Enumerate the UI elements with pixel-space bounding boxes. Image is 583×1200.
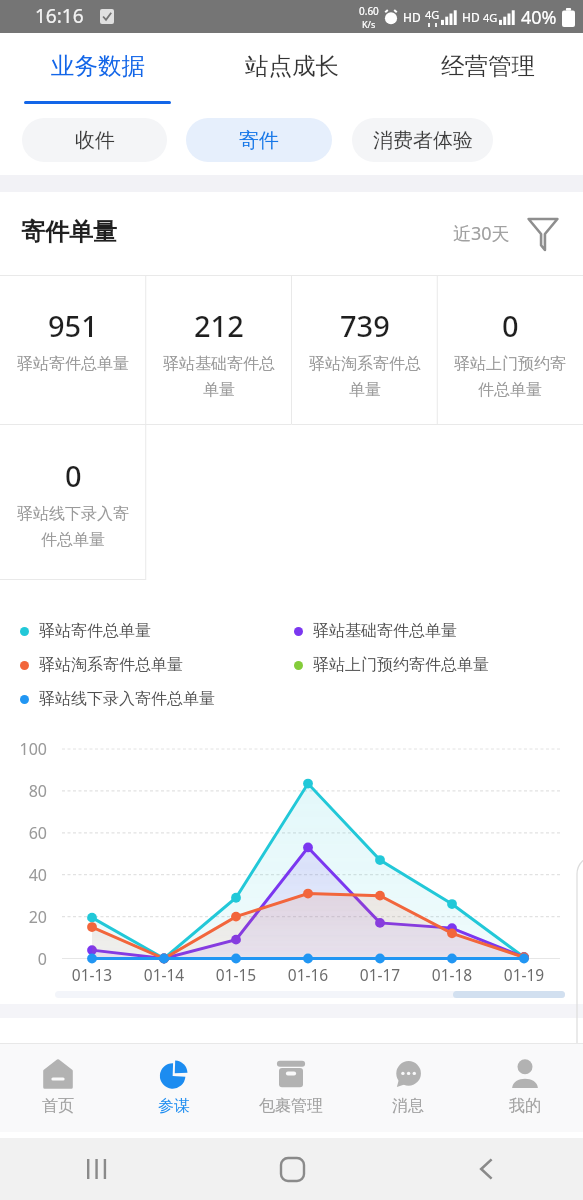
button[interactable]: 951 bbox=[0, 275, 146, 424]
staticText: 40 bbox=[0, 864, 47, 886]
staticText: HD bbox=[403, 9, 421, 25]
button[interactable]: Recents bbox=[0, 1138, 195, 1200]
staticText: 收件 bbox=[75, 128, 115, 153]
button[interactable]: Home bbox=[195, 1138, 389, 1200]
button[interactable]: 经营管理 bbox=[398, 33, 578, 101]
button[interactable]: 0 bbox=[0, 425, 146, 580]
staticText: 01-13 bbox=[57, 964, 127, 985]
staticText: 驿站淘系寄件总单量 bbox=[305, 354, 425, 400]
staticText: 80 bbox=[0, 780, 47, 802]
staticText: 4G bbox=[425, 7, 440, 22]
staticText: 0 bbox=[0, 948, 47, 970]
staticText: 20 bbox=[0, 906, 47, 928]
button[interactable]: 收件 bbox=[22, 118, 167, 162]
staticText: 驿站寄件总单量 bbox=[17, 354, 129, 374]
staticText: 消息 bbox=[392, 1096, 424, 1116]
staticText: 212 bbox=[194, 306, 244, 345]
staticText: 驿站线下录入寄件总单量 bbox=[13, 504, 133, 550]
staticText: 01-16 bbox=[273, 964, 343, 985]
staticText: 951 bbox=[48, 306, 98, 345]
button[interactable]: 消息 bbox=[349, 1043, 466, 1132]
button[interactable]: Back bbox=[389, 1138, 583, 1200]
staticText: 驿站基础寄件总单量 bbox=[159, 354, 279, 400]
staticText: 100 bbox=[0, 738, 47, 760]
button[interactable]: 近30天 bbox=[453, 217, 559, 251]
button[interactable]: 参谋 bbox=[116, 1043, 232, 1132]
staticText: 驿站上门预约寄件总单量 bbox=[450, 354, 570, 400]
staticText: 60 bbox=[0, 822, 47, 844]
staticText: 业务数据 bbox=[51, 51, 145, 81]
staticText: 我的 bbox=[509, 1096, 541, 1116]
button[interactable]: 212 bbox=[146, 275, 292, 424]
staticText: 站点成长 bbox=[245, 51, 339, 81]
staticText: 驿站寄件总单量 bbox=[39, 621, 151, 641]
staticText: 近30天 bbox=[453, 221, 510, 246]
staticText: 驿站上门预约寄件总单量 bbox=[313, 655, 489, 675]
staticText: 参谋 bbox=[158, 1096, 190, 1116]
button[interactable]: 寄件 bbox=[186, 118, 332, 162]
staticText: 寄件 bbox=[239, 128, 279, 153]
staticText: 0 bbox=[65, 456, 82, 495]
staticText: 01-18 bbox=[417, 964, 487, 985]
staticText: 驿站基础寄件总单量 bbox=[313, 621, 457, 641]
staticText: K/s bbox=[362, 18, 376, 30]
staticText: 01-17 bbox=[345, 964, 415, 985]
staticText: 0.60 bbox=[359, 4, 379, 18]
staticText: 01-14 bbox=[129, 964, 199, 985]
staticText: HD bbox=[462, 9, 480, 25]
button[interactable]: 站点成长 bbox=[202, 33, 382, 101]
button[interactable]: 739 bbox=[292, 275, 438, 424]
staticText: 4G bbox=[483, 10, 498, 25]
button[interactable]: 业务数据 bbox=[8, 33, 188, 101]
button[interactable]: 0 bbox=[437, 275, 583, 424]
button[interactable]: 包裹管理 bbox=[232, 1043, 349, 1132]
other: Filter bbox=[527, 217, 559, 251]
staticText: 0 bbox=[502, 306, 519, 345]
staticText: 经营管理 bbox=[441, 51, 535, 81]
staticText: 16:16 bbox=[35, 3, 84, 29]
staticText: 01-19 bbox=[489, 964, 559, 985]
staticText: 驿站线下录入寄件总单量 bbox=[39, 689, 215, 709]
staticText: 首页 bbox=[42, 1096, 74, 1116]
staticText: 包裹管理 bbox=[259, 1096, 323, 1116]
button[interactable]: 我的 bbox=[466, 1043, 583, 1132]
staticText: 01-15 bbox=[201, 964, 271, 985]
staticText: 寄件单量 bbox=[21, 217, 117, 247]
staticText: 40% bbox=[521, 5, 557, 30]
staticText: 驿站淘系寄件总单量 bbox=[39, 655, 183, 675]
staticText: 消费者体验 bbox=[373, 128, 473, 153]
button[interactable]: 消费者体验 bbox=[352, 118, 493, 162]
staticText: 739 bbox=[340, 306, 390, 345]
button[interactable]: 首页 bbox=[0, 1043, 116, 1132]
